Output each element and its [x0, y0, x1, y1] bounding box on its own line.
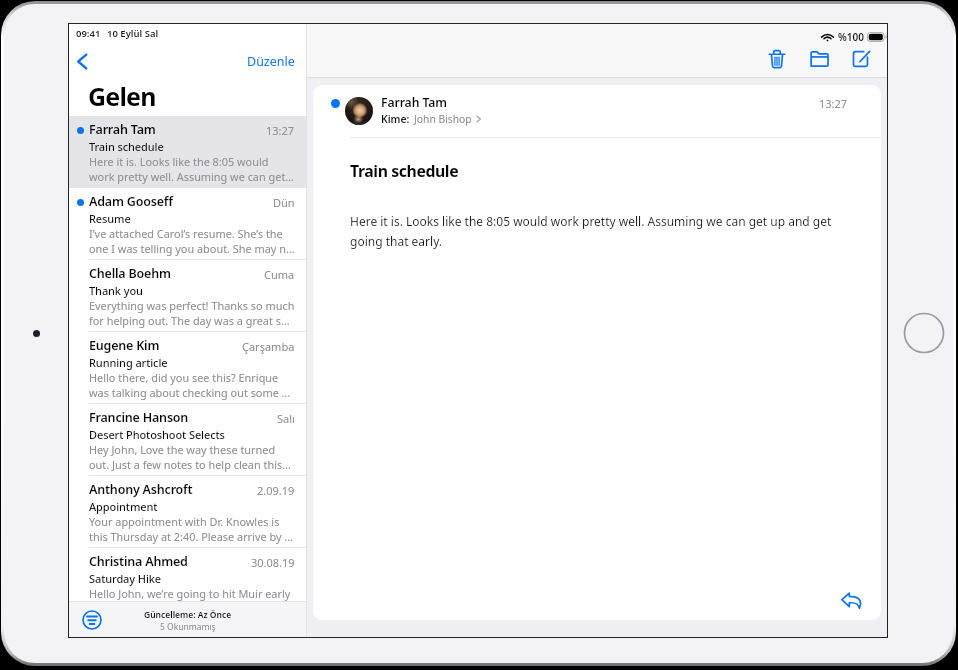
staticText: Salı: [277, 411, 295, 426]
staticText: Thank you: [89, 283, 143, 298]
staticText: Appointment: [89, 499, 158, 514]
button[interactable]: Anthony Ashcroft: [69, 476, 306, 548]
staticText: 30.08.19: [251, 555, 295, 570]
staticText: Resume: [89, 211, 131, 226]
button[interactable]: Christina Ahmed: [69, 548, 306, 601]
button[interactable]: Francine Hanson: [69, 404, 306, 476]
button[interactable]: Reply: [838, 586, 866, 614]
staticText: Everything was perfect! Thanks so much f…: [89, 298, 295, 328]
button[interactable]: Delete: [762, 44, 792, 74]
button[interactable]: Move to folder: [804, 44, 834, 74]
staticText: Eugene Kim: [89, 337, 239, 354]
button[interactable]: Düzenle: [236, 47, 306, 76]
button[interactable]: Farrah Tam: [69, 116, 306, 188]
staticText: Düzenle: [247, 53, 295, 70]
staticText: Hello John, we’re going to hit Muir earl…: [89, 586, 295, 601]
staticText: Farrah Tam: [381, 94, 447, 111]
staticText: Hello there, did you see this? Enrique w…: [89, 370, 295, 400]
staticText: John Bishop: [414, 112, 472, 126]
staticText: %100: [838, 30, 864, 44]
staticText: 13:27: [819, 96, 848, 111]
button[interactable]: Eugene Kim: [69, 332, 306, 404]
staticText: Francine Hanson: [89, 409, 274, 426]
staticText: Hey John, Love the way these turned out.…: [89, 442, 295, 472]
staticText: Running article: [89, 355, 168, 370]
staticText: Güncelleme: Az Önce: [144, 609, 232, 621]
staticText: 10 Eylül Sal: [107, 27, 159, 40]
staticText: Dün: [273, 195, 295, 210]
staticText: Adam Gooseff: [89, 193, 270, 210]
staticText: Anthony Ashcroft: [89, 481, 254, 498]
staticText: 13:27: [266, 123, 295, 138]
staticText: I’ve attached Carol’s resume. She’s the …: [89, 226, 295, 256]
staticText: Christina Ahmed: [89, 553, 248, 570]
staticText: Saturday Hike: [89, 571, 162, 586]
staticText: Cuma: [264, 267, 295, 282]
staticText: 09:41: [76, 27, 101, 40]
staticText: 2.09.19: [257, 483, 295, 498]
staticText: Your appointment with Dr. Knowles is thi…: [89, 514, 295, 544]
staticText: Gelen: [88, 79, 156, 112]
staticText: 5 Okunmamış: [160, 621, 216, 633]
button[interactable]: Compose: [846, 44, 876, 74]
staticText: Here it is. Looks like the 8:05 would wo…: [89, 154, 295, 184]
button[interactable]: Chella Boehm: [69, 260, 306, 332]
staticText: Train schedule: [89, 139, 164, 154]
button[interactable]: Back: [69, 48, 95, 74]
staticText: Here it is. Looks like the 8:05 would wo…: [350, 213, 846, 249]
button[interactable]: Filter: [80, 608, 104, 632]
staticText: Kime:: [381, 112, 410, 126]
staticText: Çarşamba: [242, 339, 295, 354]
button[interactable]: Adam Gooseff: [69, 188, 306, 260]
staticText: Farrah Tam: [89, 121, 263, 138]
staticText: Train schedule: [350, 160, 459, 182]
staticText: Chella Boehm: [89, 265, 261, 282]
staticText: Desert Photoshoot Selects: [89, 427, 225, 442]
